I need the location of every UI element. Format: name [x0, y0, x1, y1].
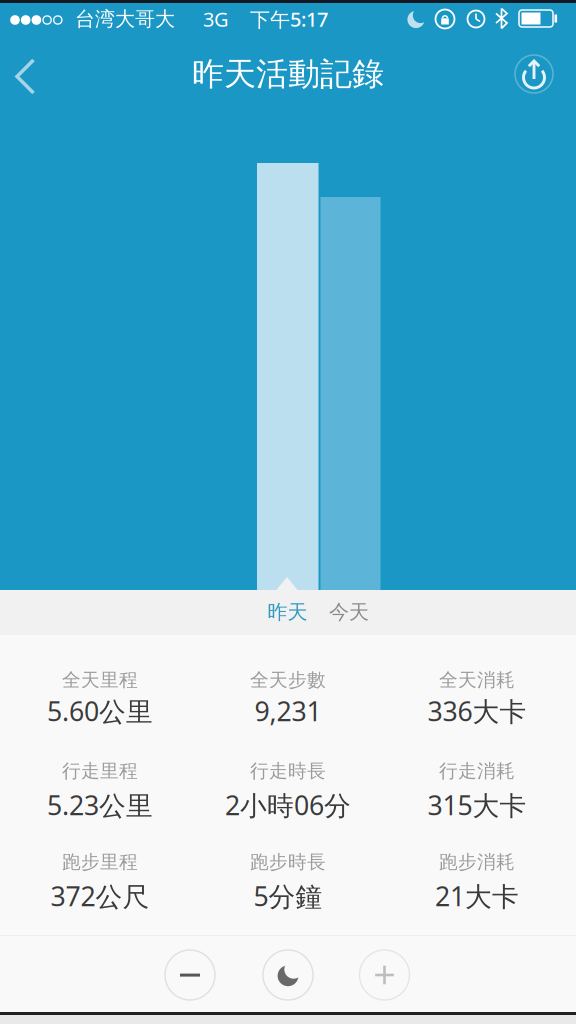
staticText: 315大卡: [427, 787, 526, 823]
staticText: 下午5:17: [250, 6, 328, 32]
staticText: 今天: [329, 600, 369, 624]
button[interactable]: Share: [510, 50, 558, 98]
staticText: 336大卡: [427, 693, 526, 729]
staticText: 2小時06分: [225, 787, 351, 823]
staticText: 372公尺: [50, 878, 149, 914]
staticText: 昨天活動記錄: [192, 54, 384, 94]
staticText: 全天里程: [62, 668, 138, 691]
staticText: 5.60公里: [47, 693, 153, 729]
staticText: 台湾大哥大: [75, 7, 175, 31]
staticText: 跑步里程: [62, 850, 138, 873]
staticText: 跑步時長: [250, 850, 326, 873]
button[interactable]: Back: [2, 54, 46, 99]
staticText: 行走時長: [250, 759, 326, 782]
button[interactable]: Increase: [356, 947, 412, 1003]
staticText: 跑步消耗: [439, 850, 515, 873]
staticText: 9,231: [254, 693, 321, 729]
staticText: 行走消耗: [439, 759, 515, 782]
button[interactable]: 昨天: [257, 589, 317, 634]
button[interactable]: Decrease: [162, 947, 218, 1003]
button[interactable]: 今天: [319, 589, 379, 634]
staticText: 5.23公里: [47, 787, 153, 823]
staticText: 行走里程: [62, 759, 138, 782]
staticText: 21大卡: [435, 878, 519, 914]
staticText: 3G: [203, 6, 229, 32]
staticText: 全天步數: [250, 668, 326, 691]
staticText: 昨天: [267, 600, 307, 624]
staticText: 全天消耗: [439, 668, 515, 691]
button[interactable]: Sleep mode: [260, 947, 316, 1003]
staticText: 5分鐘: [253, 878, 322, 914]
